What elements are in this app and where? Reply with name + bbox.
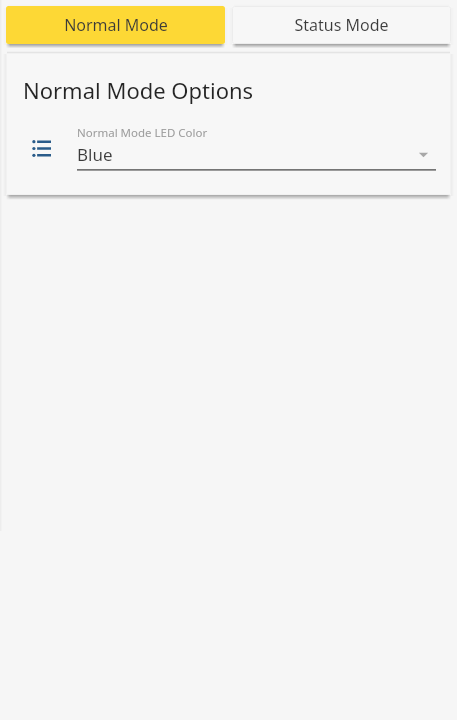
- staticText: Normal Mode Options: [23, 75, 254, 105]
- button[interactable]: Status Mode: [232, 6, 451, 44]
- staticText: Status Mode: [294, 14, 389, 36]
- button[interactable]: Normal Mode LED Color: [77, 125, 436, 171]
- button[interactable]: Normal Mode: [6, 6, 225, 44]
- staticText: Normal Mode LED Color: [77, 125, 208, 141]
- other: LED colour list: [32, 139, 51, 158]
- staticText: Normal Mode: [64, 14, 168, 36]
- staticText: Blue: [77, 143, 418, 166]
